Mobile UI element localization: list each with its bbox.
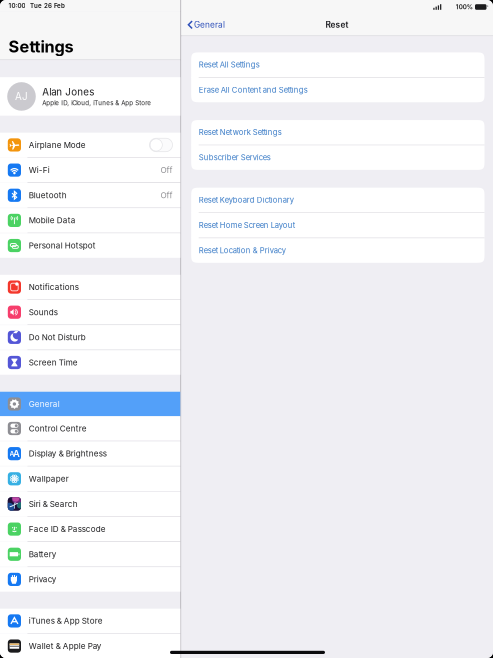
staticText: Battery xyxy=(29,549,57,559)
staticText: Reset Network Settings xyxy=(199,128,282,137)
staticText: Bluetooth xyxy=(29,190,67,200)
staticText: Control Centre xyxy=(29,424,87,433)
button[interactable]: Mobile Data xyxy=(0,208,180,233)
staticText: Siri & Search xyxy=(29,499,78,509)
staticText: Personal Hotspot xyxy=(29,241,96,250)
button[interactable]: AJ xyxy=(0,77,180,116)
staticText: Reset Keyboard Dictionary xyxy=(199,195,294,205)
staticText: Reset Location & Privacy xyxy=(199,246,286,255)
staticText: AJ xyxy=(15,90,28,102)
button[interactable]: Reset Keyboard Dictionary xyxy=(191,188,484,212)
staticText: A xyxy=(13,448,20,459)
button[interactable]: Subscriber Services xyxy=(191,145,484,170)
staticText: Off xyxy=(160,190,172,200)
staticText: Tue 26 Feb xyxy=(30,2,65,9)
staticText: 10:00 xyxy=(8,2,25,9)
staticText: Off xyxy=(160,165,172,175)
staticText: iTunes & App Store xyxy=(29,616,103,626)
button[interactable]: Control Centre xyxy=(0,416,180,441)
button[interactable]: Siri & Search xyxy=(0,492,180,516)
staticText: Reset All Settings xyxy=(199,60,260,69)
staticText: Screen Time xyxy=(29,358,78,367)
staticText: Reset Home Screen Layout xyxy=(199,221,295,230)
button[interactable]: General xyxy=(0,392,180,416)
staticText: Erase All Content and Settings xyxy=(199,85,308,94)
button[interactable]: Sounds xyxy=(0,300,180,324)
button[interactable]: Face ID & Passcode xyxy=(0,517,180,541)
button[interactable]: Airplane Mode xyxy=(0,133,180,157)
button[interactable]: Wallet & Apple Pay xyxy=(0,634,180,658)
button[interactable]: Personal Hotspot xyxy=(0,233,180,258)
button[interactable]: Reset Location & Privacy xyxy=(191,238,484,263)
staticText: Wallet & Apple Pay xyxy=(29,641,102,651)
staticText: Mobile Data xyxy=(29,215,76,225)
button[interactable]: A xyxy=(0,441,180,466)
button[interactable]: Screen Time xyxy=(0,350,180,375)
staticText: A xyxy=(10,450,15,458)
staticText: Alan Jones xyxy=(42,86,94,98)
button[interactable]: Erase All Content and Settings xyxy=(191,78,484,102)
button[interactable]: iTunes & App Store xyxy=(0,609,180,633)
staticText: Face ID & Passcode xyxy=(29,524,106,534)
button[interactable]: Privacy xyxy=(0,567,180,592)
staticText: General xyxy=(194,20,225,30)
staticText: Apple ID, iCloud, iTunes & App Store xyxy=(42,99,151,107)
button[interactable]: Reset Home Screen Layout xyxy=(191,213,484,237)
staticText: Sounds xyxy=(29,307,58,317)
staticText: Notifications xyxy=(29,282,79,292)
staticText: Reset xyxy=(326,20,349,30)
button[interactable]: Battery xyxy=(0,542,180,566)
button[interactable]: General xyxy=(181,14,231,35)
button[interactable]: Wi-Fi xyxy=(0,158,180,182)
button[interactable]: Reset All Settings xyxy=(191,52,484,77)
staticText: Wi-Fi xyxy=(29,165,50,175)
staticText: Do Not Disturb xyxy=(29,332,86,342)
staticText: Settings xyxy=(8,37,73,56)
staticText: Subscriber Services xyxy=(199,153,271,162)
button[interactable]: Do Not Disturb xyxy=(0,325,180,350)
button[interactable]: Bluetooth xyxy=(0,183,180,207)
staticText: Display & Brightness xyxy=(29,449,107,459)
button[interactable]: Notifications xyxy=(0,275,180,299)
button[interactable]: Wallpaper xyxy=(0,467,180,491)
staticText: Privacy xyxy=(29,574,57,584)
staticText: 100% xyxy=(456,3,473,11)
staticText: Wallpaper xyxy=(29,474,69,484)
button[interactable]: Reset Network Settings xyxy=(191,120,484,145)
staticText: Airplane Mode xyxy=(29,140,86,150)
staticText: General xyxy=(29,399,60,409)
